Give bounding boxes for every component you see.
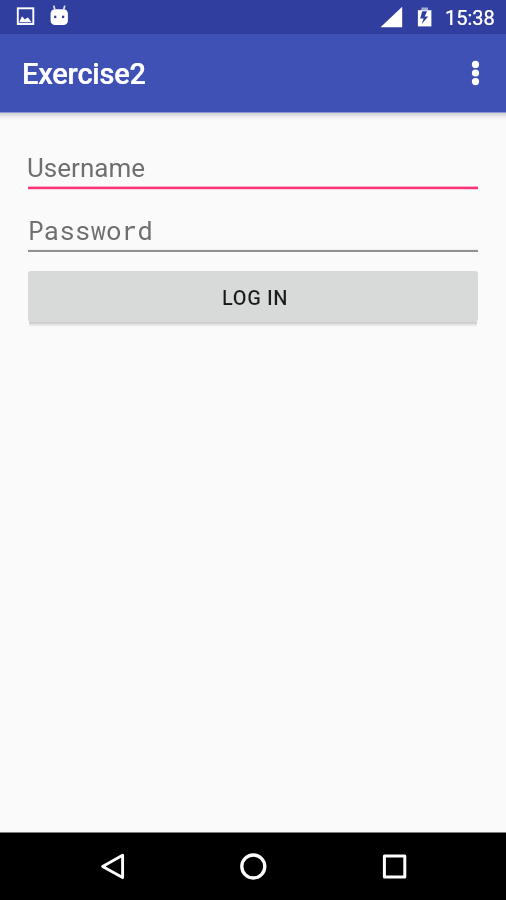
staticText: LOG IN <box>222 286 288 309</box>
button[interactable]: Recent apps <box>369 842 417 890</box>
button[interactable]: More options <box>451 49 499 97</box>
staticText: Exercise2 <box>22 57 146 91</box>
button[interactable]: Password input field <box>28 208 478 252</box>
button[interactable]: Username input field <box>28 148 478 189</box>
button[interactable]: Back <box>88 842 136 890</box>
button[interactable]: LOG IN <box>28 271 478 322</box>
button[interactable]: Home <box>229 842 277 890</box>
staticText: Username <box>27 153 145 183</box>
staticText: 15:38 <box>445 6 495 29</box>
staticText: Password <box>28 213 153 247</box>
